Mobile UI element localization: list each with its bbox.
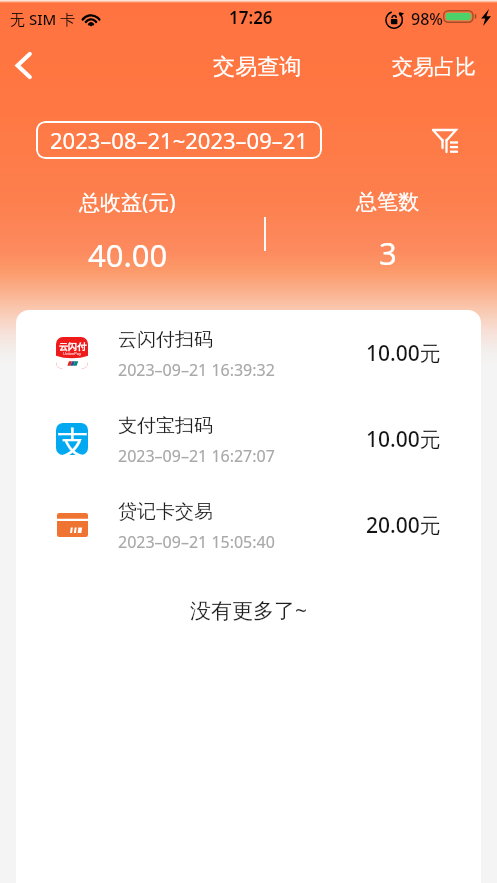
staticText: 2023–09–21 16:39:32 [118, 359, 275, 381]
button[interactable]: 贷记卡交易 [16, 482, 481, 568]
button[interactable]: 交易占比 [378, 44, 490, 90]
staticText: 98% [411, 8, 443, 30]
button[interactable]: 云闪付 [16, 310, 481, 396]
staticText: 2023–08–21~2023–09–21 [50, 125, 308, 155]
staticText: 支付宝扫码 [118, 414, 213, 438]
button[interactable]: 支 [16, 396, 481, 482]
staticText: 贷记卡交易 [118, 500, 213, 524]
staticText: 2023–09–21 15:05:40 [118, 531, 275, 553]
staticText: 总收益(元) [79, 188, 176, 217]
staticText: 10.00元 [366, 339, 441, 368]
staticText: UnionPay [63, 351, 82, 356]
staticText: 17:26 [229, 6, 273, 29]
staticText: 交易查询 [213, 53, 302, 81]
staticText: 40.00 [88, 234, 168, 276]
button[interactable]: 交易查询 [213, 53, 302, 81]
staticText: 3 [379, 232, 397, 274]
staticText: 支 [57, 423, 88, 455]
staticText: 云闪付扫码 [118, 328, 213, 352]
staticText: 总笔数 [356, 189, 419, 215]
staticText: 10.00元 [366, 425, 441, 454]
staticText: 20.00元 [366, 511, 441, 540]
button[interactable]: 返回 [0, 42, 46, 88]
button[interactable]: 2023–08–21~2023–09–21 [36, 121, 322, 159]
staticText: 2023–09–21 16:27:07 [118, 445, 275, 467]
staticText: 无 SIM 卡 [10, 9, 76, 29]
staticText: 交易占比 [392, 54, 476, 80]
button[interactable]: 筛选 [418, 116, 468, 164]
staticText: 没有更多了~ [16, 596, 481, 625]
staticText: 云闪付 [59, 341, 86, 352]
